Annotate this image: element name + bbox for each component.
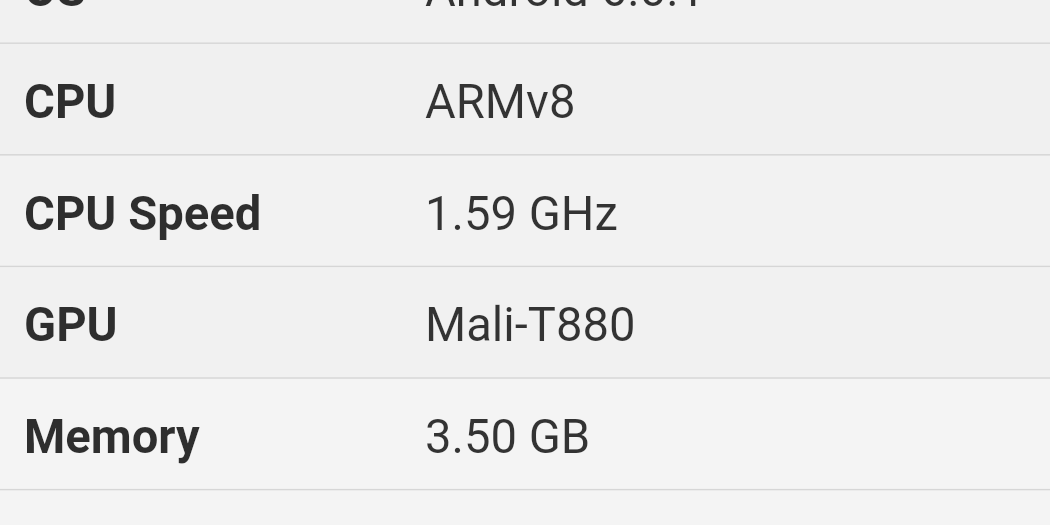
staticText: Mali-T880 [425, 297, 636, 352]
button[interactable]: GPU [0, 267, 1050, 379]
staticText: GPU [24, 297, 118, 352]
staticText: 3.50 GB [425, 409, 591, 464]
staticText: 1.59 GHz [425, 186, 618, 241]
button[interactable]: CPU [0, 44, 1050, 156]
staticText: CPU Speed [24, 186, 262, 241]
button[interactable]: Memory [0, 379, 1050, 491]
staticText: Memory [24, 409, 200, 464]
button[interactable]: OS [0, 0, 1050, 44]
staticText: CPU [24, 74, 117, 129]
staticText: OS [24, 0, 86, 17]
button[interactable]: CPU Speed [0, 156, 1050, 268]
staticText: ARMv8 [425, 74, 576, 129]
staticText: Android 6.0.1 [425, 0, 706, 17]
